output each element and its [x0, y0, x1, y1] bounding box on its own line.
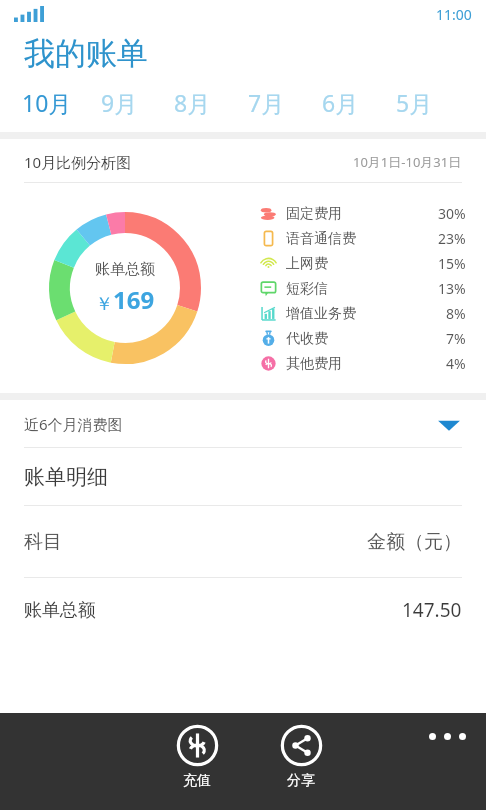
button[interactable]: 5月: [396, 87, 470, 118]
staticText: 增值业务费: [286, 305, 356, 323]
button[interactable]: 近6个月消费图: [0, 400, 486, 447]
staticText: 11:00: [436, 5, 472, 24]
staticText: 科目: [24, 530, 62, 554]
staticText: 23%: [438, 229, 466, 248]
button[interactable]: 充值: [168, 722, 226, 792]
staticText: 7月: [248, 87, 285, 118]
staticText: 近6个月消费图: [24, 414, 123, 434]
staticText: 短彩信: [286, 280, 328, 298]
staticText: 9月: [101, 87, 138, 118]
staticText: 账单总额: [24, 599, 96, 622]
staticText: 8月: [174, 87, 211, 118]
staticText: 其他费用: [286, 355, 342, 373]
button[interactable]: 代收费: [260, 326, 466, 351]
button[interactable]: 7月: [248, 87, 322, 118]
staticText: 账单总额: [95, 260, 155, 279]
staticText: 169: [113, 283, 155, 316]
button[interactable]: 更多: [423, 727, 472, 746]
button[interactable]: 8月: [174, 87, 248, 118]
staticText: 15%: [438, 254, 466, 273]
staticText: 金额（元）: [367, 530, 462, 554]
button[interactable]: 上网费: [260, 251, 466, 276]
other: 展开: [436, 416, 462, 432]
button[interactable]: 固定费用: [260, 201, 466, 226]
button[interactable]: 增值业务费: [260, 301, 466, 326]
button[interactable]: 9月: [101, 87, 174, 118]
staticText: ￥: [95, 293, 113, 316]
staticText: 30%: [438, 204, 466, 223]
staticText: 分享: [287, 772, 315, 790]
button[interactable]: 10月: [22, 87, 101, 118]
staticText: 10月1日-10月31日: [353, 153, 462, 171]
staticText: 4%: [446, 354, 466, 373]
staticText: 13%: [438, 279, 466, 298]
staticText: 6月: [322, 87, 359, 118]
staticText: 充值: [183, 772, 211, 790]
button[interactable]: 6月: [322, 87, 396, 118]
staticText: 5月: [396, 87, 433, 118]
button[interactable]: 分享: [272, 722, 330, 792]
button[interactable]: 短彩信: [260, 276, 466, 301]
staticText: 7%: [446, 329, 466, 348]
staticText: 代收费: [286, 330, 328, 348]
staticText: 固定费用: [286, 205, 342, 223]
button[interactable]: 语音通信费: [260, 226, 466, 251]
staticText: 10月: [22, 87, 72, 118]
staticText: 上网费: [286, 255, 328, 273]
staticText: 147.50: [402, 597, 462, 623]
staticText: 我的账单: [24, 34, 148, 73]
staticText: 账单明细: [24, 464, 108, 490]
button[interactable]: 其他费用: [260, 351, 466, 376]
staticText: 10月比例分析图: [24, 152, 132, 172]
staticText: 8%: [446, 304, 466, 323]
button[interactable]: 账单总额: [0, 578, 486, 642]
staticText: 语音通信费: [286, 230, 356, 248]
